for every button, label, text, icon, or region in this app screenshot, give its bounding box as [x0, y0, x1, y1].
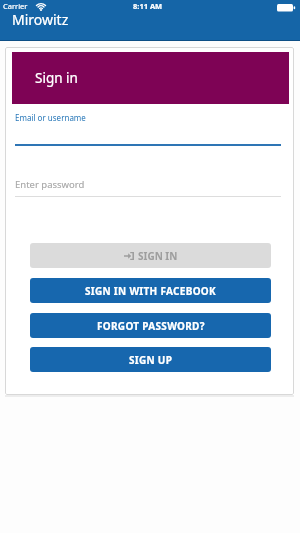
staticText: Enter password [15, 178, 85, 191]
staticText: Email or username [15, 112, 86, 123]
staticText: Mirowitz [12, 10, 69, 29]
staticText: Sign in [35, 69, 78, 87]
staticText: FORGOT PASSWORD? [97, 319, 205, 333]
button[interactable]: SIGN UP [30, 347, 271, 372]
button[interactable]: Enter password [15, 172, 281, 197]
staticText: SIGN IN WITH FACEBOOK [85, 284, 217, 298]
staticText: 8:11 AM [133, 1, 163, 11]
button[interactable]: Email or username [15, 110, 281, 146]
button[interactable]: SIGN IN [30, 243, 271, 268]
staticText: SIGN UP [129, 353, 173, 367]
staticText: SIGN IN [138, 249, 178, 263]
staticText: Carrier [3, 1, 28, 11]
button[interactable]: SIGN IN WITH FACEBOOK [30, 278, 271, 303]
button[interactable]: FORGOT PASSWORD? [30, 313, 271, 338]
